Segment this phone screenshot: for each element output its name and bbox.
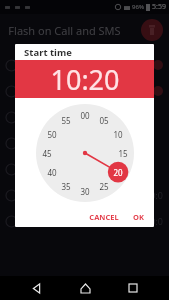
staticText: Stop time bbox=[25, 215, 150, 227]
button[interactable]: Recents bbox=[121, 276, 145, 300]
staticText: Flash on Call bbox=[25, 59, 143, 71]
staticText: 40 bbox=[47, 167, 57, 178]
staticText: Start time bbox=[24, 46, 72, 59]
staticText: 35 bbox=[61, 181, 71, 192]
button[interactable]: CANCEL bbox=[85, 210, 123, 224]
button[interactable]: Stop time bbox=[0, 208, 169, 234]
staticText: 0:0 bbox=[150, 189, 163, 201]
staticText: 96% bbox=[132, 3, 144, 11]
staticText: Device settings bbox=[25, 163, 163, 175]
staticText: 10:20 bbox=[50, 61, 120, 98]
button[interactable]: OK bbox=[129, 210, 148, 224]
button[interactable]: Flash on Call bbox=[0, 52, 169, 78]
button[interactable]: Device settings bbox=[0, 156, 169, 182]
staticText: Flash on Notification bbox=[25, 111, 163, 123]
button[interactable]: Start time bbox=[0, 182, 169, 208]
staticText: 15 bbox=[118, 148, 128, 159]
staticText: 50 bbox=[47, 129, 57, 140]
staticText: Demo bbox=[25, 137, 163, 149]
staticText: 10 bbox=[113, 129, 123, 140]
button[interactable]: Home bbox=[73, 276, 97, 300]
button[interactable]: Flash on SMS bbox=[0, 78, 169, 104]
staticText: OK bbox=[133, 212, 144, 222]
staticText: 5:59 bbox=[152, 2, 166, 12]
staticText: 25 bbox=[99, 181, 109, 192]
staticText: 0:0 bbox=[150, 215, 163, 227]
staticText: Flash on SMS bbox=[25, 85, 143, 97]
staticText: 00 bbox=[80, 110, 90, 121]
button[interactable]: 10:20 bbox=[15, 60, 154, 98]
button[interactable]: Back bbox=[24, 276, 48, 300]
staticText: Start time bbox=[25, 189, 150, 201]
staticText: 20 bbox=[113, 167, 123, 178]
staticText: 45 bbox=[42, 148, 52, 159]
staticText: 55 bbox=[61, 115, 71, 126]
staticText: CANCEL bbox=[89, 212, 119, 222]
button[interactable]: Demo bbox=[0, 130, 169, 156]
staticText: Flash on Call and SMS bbox=[8, 23, 121, 38]
staticText: 30 bbox=[80, 186, 90, 197]
button[interactable]: Flash on Notification bbox=[0, 104, 169, 130]
button[interactable]: Toggle flashlight bbox=[141, 19, 163, 41]
staticText: 05 bbox=[99, 115, 109, 126]
